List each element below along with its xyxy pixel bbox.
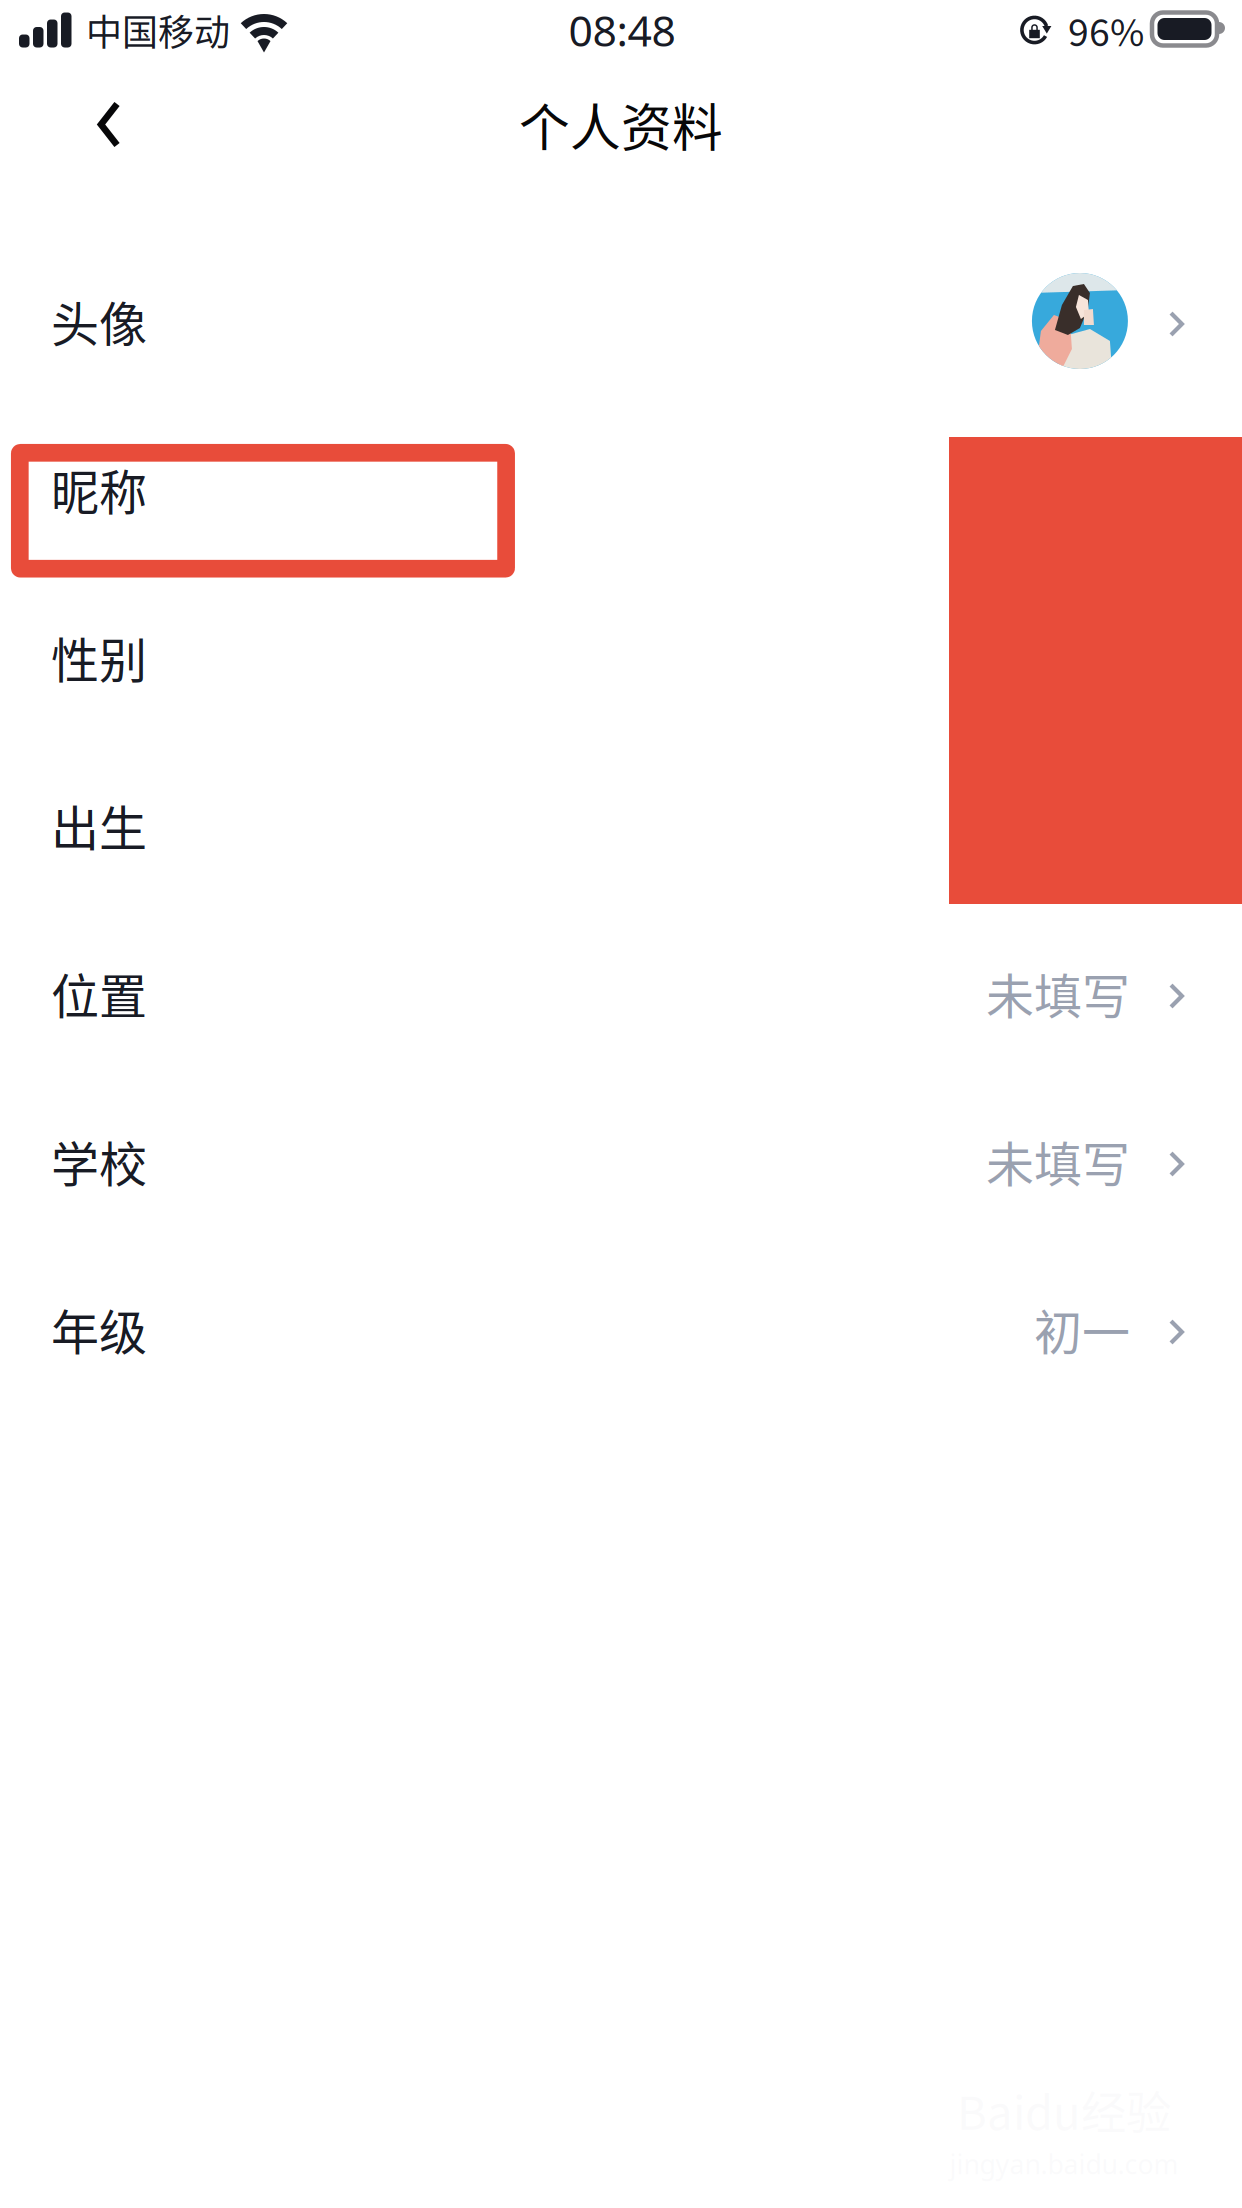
button[interactable]: 昵称 [0,405,1242,573]
staticText: 初一 [1034,1294,1130,1364]
staticText: 出生 [51,790,147,860]
staticText: 位置 [51,958,147,1028]
staticText: 昵称 [51,454,147,524]
staticText: 个人资料 [519,88,723,161]
staticText: 96% [1068,3,1144,57]
button[interactable]: 返回 [43,69,175,179]
staticText: 性别 [51,622,147,692]
button[interactable]: 学校 [0,1077,1242,1245]
staticText: 未填写 [986,958,1130,1028]
button[interactable]: 位置 [0,909,1242,1077]
button[interactable]: 性别 [0,573,1242,741]
button[interactable]: 出生 [0,741,1242,909]
staticText: 中国移动 [86,4,230,56]
staticText: 学校 [51,1126,147,1196]
button[interactable]: 年级 [0,1245,1242,1413]
staticText: 年级 [51,1294,147,1364]
staticText: 08:48 [568,1,675,59]
staticText: 未填写 [986,1126,1130,1196]
button[interactable]: 头像 [0,237,1242,405]
staticText: 头像 [51,286,147,356]
